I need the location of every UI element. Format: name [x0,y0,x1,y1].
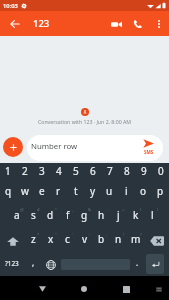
button[interactable]: Video call [105,13,127,35]
button[interactable]: 1 [0,163,16,183]
staticText: k [133,208,139,222]
staticText: v [82,232,88,246]
button[interactable]: e [33,183,50,207]
button[interactable]: p [152,183,169,207]
button[interactable]: Recents [105,278,147,298]
button[interactable]: o [135,183,152,207]
staticText: @ [20,207,24,213]
staticText: g [81,208,88,222]
button[interactable]: Back [2,11,27,36]
button[interactable]: m [127,231,144,255]
button[interactable]: 8 [118,163,135,183]
staticText: SMS [144,149,154,155]
button[interactable]: 9 [135,163,152,183]
button[interactable]: 3 [33,163,50,183]
button[interactable]: Hide keyboard [21,278,63,298]
staticText: 9 [141,164,147,178]
button[interactable]: l [144,207,161,231]
staticText: s [31,208,36,222]
button[interactable]: y [84,183,101,207]
button[interactable]: Home [63,278,105,298]
staticText: l [151,208,154,222]
button[interactable]: Change language [42,255,60,276]
staticText: p [157,184,164,198]
staticText: _ [72,207,74,213]
button[interactable]: d [42,207,59,231]
staticText: 2 [22,164,28,178]
staticText: . [136,257,139,268]
staticText: ' [72,232,73,238]
button[interactable]: a [8,207,25,231]
staticText: u [106,184,113,198]
staticText: m [131,232,141,246]
staticText: ) [157,207,159,213]
staticText: z [31,232,36,246]
button[interactable]: q [0,183,16,207]
staticText: 7 [107,164,113,178]
button[interactable]: 6 [84,163,101,183]
staticText: n [115,232,122,246]
button[interactable]: t [67,183,84,207]
staticText: 6 [90,164,96,178]
button[interactable]: 4 [50,163,67,183]
staticText: - [106,207,108,213]
staticText: j [117,208,120,222]
staticText: o [140,184,147,198]
button[interactable]: Call [127,13,149,35]
button[interactable]: . [130,255,144,276]
button[interactable]: g [76,207,93,231]
staticText: i [125,184,128,198]
button[interactable]: , [26,255,40,276]
staticText: e [39,184,45,198]
staticText: " [55,232,57,238]
button[interactable]: Send SMS [133,135,163,161]
button[interactable]: n [110,231,127,255]
staticText: 4 [56,164,62,178]
staticText: q [5,184,12,198]
button[interactable]: w [16,183,33,207]
staticText: ?123 [5,259,19,268]
staticText: + [122,207,125,213]
staticText: y [90,184,96,198]
button[interactable]: Enter [146,254,164,274]
staticText: 0 [158,164,164,178]
button[interactable]: More options [149,14,169,34]
staticText: d [47,208,54,222]
button[interactable]: i [118,183,135,207]
button[interactable]: j [110,207,127,231]
button[interactable]: ?123 [0,255,24,276]
staticText: 123 [33,17,50,30]
button[interactable]: Shift [0,231,25,255]
button[interactable]: x [42,231,59,255]
button[interactable]: 0 [152,163,169,183]
button[interactable]: Add attachment [3,137,23,157]
button[interactable]: 2 [16,163,33,183]
staticText: 8 [124,164,130,178]
button[interactable]: f [59,207,76,231]
button[interactable]: h [93,207,110,231]
button[interactable]: Backspace [144,231,169,255]
button[interactable]: u [101,183,118,207]
staticText: ! [123,232,125,238]
button[interactable]: v [76,231,93,255]
button[interactable]: 5 [67,163,84,183]
staticText: t [74,184,78,198]
staticText: a [14,208,20,222]
staticText: x [48,232,54,246]
staticText: * [37,232,40,238]
button[interactable]: 7 [101,163,118,183]
staticText: ( [140,207,142,213]
staticText: , [32,257,35,268]
button[interactable]: c [59,231,76,255]
button[interactable]: z [25,231,42,255]
staticText: 10:03 [3,2,18,10]
button[interactable]: b [93,231,110,255]
button[interactable]: k [127,207,144,231]
button[interactable]: s [25,207,42,231]
button[interactable]: Switch keyboard [150,278,168,298]
staticText: b [98,232,105,246]
button[interactable]: Number row [27,135,163,161]
staticText: 5 [73,164,79,178]
button[interactable]: r [50,183,67,207]
